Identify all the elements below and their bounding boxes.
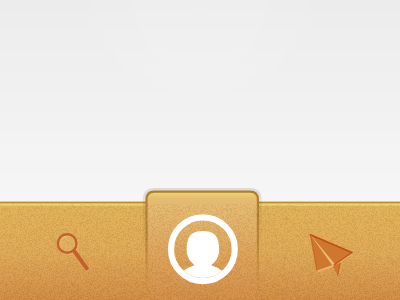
- button[interactable]: Profile: [145, 191, 259, 300]
- button[interactable]: Search: [0, 202, 145, 300]
- button[interactable]: Send: [259, 202, 400, 300]
